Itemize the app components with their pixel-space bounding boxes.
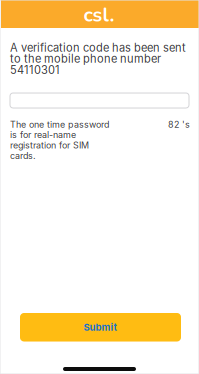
staticText: 54110301 [10, 63, 60, 77]
staticText: The one time password [10, 119, 109, 130]
button[interactable]: Submit [20, 313, 181, 341]
staticText: 82 's [168, 119, 190, 130]
staticText: A verification code has been sent [10, 41, 186, 54]
staticText: Submit [83, 321, 117, 333]
staticText: to the mobile phone number [10, 52, 161, 65]
staticText: csl. [83, 1, 114, 29]
staticText: registration for SIM [10, 140, 89, 151]
staticText: cards. [10, 150, 36, 161]
staticText: is for real-name [10, 129, 76, 140]
